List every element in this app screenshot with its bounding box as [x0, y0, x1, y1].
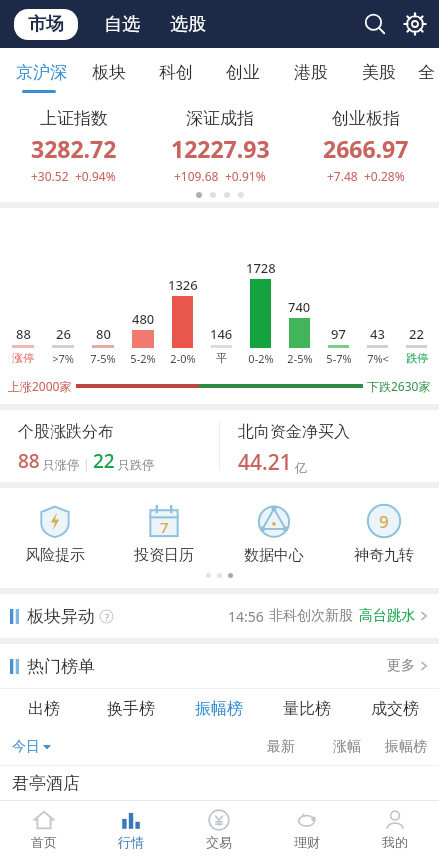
button[interactable]: 146	[202, 325, 241, 348]
staticText: 上涨2000家	[8, 378, 72, 394]
staticText: 我的	[382, 834, 408, 850]
staticText: 全	[418, 62, 435, 83]
button[interactable]: 更多	[387, 657, 429, 675]
button[interactable]: 振幅榜	[175, 689, 263, 729]
staticText: |	[80, 456, 93, 472]
button[interactable]: 480	[123, 310, 163, 348]
button[interactable]: 科创	[142, 48, 209, 96]
staticText: 出榜	[28, 699, 60, 719]
staticText: 高台跳水	[359, 607, 415, 625]
button[interactable]: 交易	[175, 801, 263, 857]
staticText: 97	[331, 325, 346, 343]
button[interactable]: 我的	[351, 801, 439, 857]
staticText: 涨幅	[295, 738, 361, 756]
button[interactable]: 1326	[163, 276, 202, 348]
staticText: 交易	[206, 834, 232, 850]
staticText: 理财	[294, 834, 320, 850]
button[interactable]: 选股	[166, 9, 210, 40]
staticText: 80	[96, 325, 111, 343]
button[interactable]: 740	[280, 298, 319, 348]
staticText: 43	[370, 325, 385, 343]
staticText: 创业	[226, 62, 260, 83]
staticText: 科创	[159, 62, 193, 83]
button[interactable]: 理财	[263, 801, 351, 857]
button[interactable]: 上证指数	[0, 106, 147, 186]
button[interactable]: 行情	[87, 801, 175, 857]
staticText: 22	[409, 325, 424, 343]
button[interactable]: 创业	[209, 48, 277, 96]
button[interactable]: 风险提示	[0, 498, 109, 567]
staticText: 量比榜	[283, 699, 331, 719]
staticText: 非科创次新股	[269, 607, 353, 625]
button[interactable]: 数据中心	[219, 498, 329, 567]
button[interactable]: 君亭酒店	[0, 766, 439, 800]
button[interactable]: 出榜	[0, 689, 87, 729]
staticText: 今日	[12, 738, 40, 756]
button[interactable]: 9	[329, 498, 439, 567]
button[interactable]: 市场	[14, 9, 78, 40]
button[interactable]: 成交榜	[351, 689, 439, 729]
staticText: 成交榜	[371, 699, 419, 719]
staticText: 480	[132, 310, 155, 328]
staticText: 2-5%	[287, 351, 313, 366]
staticText: 亿	[292, 459, 308, 475]
button[interactable]: Search	[355, 4, 395, 44]
staticText: 88	[16, 325, 31, 343]
staticText: 7%<	[367, 351, 389, 366]
staticText: 7	[160, 517, 169, 537]
staticText: 振幅榜	[195, 699, 243, 719]
staticText: 投资日历	[134, 546, 194, 565]
button[interactable]: 美股	[345, 48, 413, 96]
staticText: 创业板指	[332, 108, 400, 129]
staticText: 美股	[362, 62, 396, 83]
staticText: 更多	[387, 657, 415, 675]
button[interactable]: 7	[109, 498, 219, 567]
staticText: 涨停	[12, 351, 34, 365]
button[interactable]: 板块	[75, 48, 142, 96]
staticText: 自选	[104, 13, 140, 36]
button[interactable]: 个股涨跌分布	[0, 410, 219, 482]
staticText: +30.52	[31, 168, 69, 184]
button[interactable]: 26	[43, 325, 83, 348]
staticText: 京沪深	[16, 62, 67, 83]
staticText: 740	[288, 298, 311, 316]
button[interactable]: 97	[319, 325, 358, 348]
button[interactable]: 北向资金净买入	[220, 410, 439, 482]
staticText: 市场	[28, 13, 64, 36]
staticText: 板块异动	[27, 606, 95, 627]
staticText: +109.68	[174, 168, 219, 184]
staticText: 26	[56, 325, 71, 343]
button[interactable]: 自选	[100, 9, 144, 40]
button[interactable]: 深证成指	[147, 106, 293, 186]
button[interactable]: 京沪深	[8, 48, 75, 96]
staticText: 1326	[168, 276, 198, 294]
button[interactable]: 全	[413, 48, 439, 96]
button[interactable]: 板块异动	[0, 594, 439, 638]
staticText: 最新	[229, 738, 295, 756]
button[interactable]: 22	[397, 325, 436, 348]
staticText: +0.91%	[225, 168, 266, 184]
staticText: +0.94%	[75, 168, 116, 184]
button[interactable]: 43	[358, 325, 397, 348]
button[interactable]: 80	[83, 325, 123, 348]
button[interactable]: 1728	[241, 259, 280, 348]
button[interactable]: 今日	[12, 738, 51, 756]
staticText: 只涨停	[40, 456, 80, 472]
button[interactable]: 港股	[277, 48, 345, 96]
staticText: 0-2%	[248, 351, 274, 366]
staticText: 下跌2630家	[367, 378, 431, 394]
staticText: 跌停	[406, 351, 428, 365]
button[interactable]: 创业板指	[293, 106, 439, 186]
staticText: +7.48	[327, 168, 358, 184]
staticText: 14:56	[228, 607, 264, 626]
button[interactable]: 首页	[0, 801, 87, 857]
staticText: 1728	[246, 259, 276, 277]
button[interactable]: 88	[3, 325, 43, 348]
button[interactable]: Settings	[395, 4, 435, 44]
staticText: 港股	[294, 62, 328, 83]
staticText: 5-2%	[130, 351, 156, 366]
staticText: 9	[379, 510, 389, 533]
button[interactable]: 换手榜	[87, 689, 175, 729]
staticText: 板块	[92, 62, 126, 83]
button[interactable]: 量比榜	[263, 689, 351, 729]
